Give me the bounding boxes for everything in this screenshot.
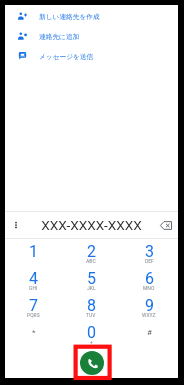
button[interactable]: More options — [5, 212, 27, 238]
staticText: 0 — [87, 323, 96, 342]
staticText: 3 — [145, 242, 154, 261]
button[interactable]: 6 — [120, 266, 178, 293]
staticText: 8 — [87, 296, 96, 315]
staticText: メッセージを送信 — [39, 53, 94, 61]
staticText: 1 — [29, 242, 38, 261]
button[interactable]: 連絡先に追加 — [5, 25, 178, 45]
button[interactable]: Call — [80, 351, 104, 375]
button[interactable]: 8 — [62, 293, 120, 320]
staticText: 2 — [87, 242, 96, 261]
staticText: DEF — [145, 258, 154, 264]
staticText: PQRS — [27, 312, 40, 318]
button[interactable]: 2 — [62, 239, 120, 266]
staticText: 7 — [29, 296, 38, 315]
button[interactable]: 0 — [62, 320, 120, 347]
staticText: XXX-XXXX-XXXX — [5, 217, 178, 233]
staticText: WXYZ — [142, 312, 156, 318]
button[interactable]: 5 — [62, 266, 120, 293]
staticText: MNO — [143, 285, 155, 291]
button[interactable]: 9 — [120, 293, 178, 320]
staticText: GHI — [29, 285, 38, 291]
staticText: ABC — [86, 258, 96, 264]
button[interactable]: 1 — [5, 239, 62, 266]
button[interactable]: * — [5, 320, 62, 347]
button[interactable]: メッセージを送信 — [5, 45, 178, 65]
button[interactable]: Backspace — [154, 212, 178, 238]
staticText: JKL — [87, 285, 96, 291]
staticText: 6 — [145, 269, 154, 288]
staticText: 5 — [87, 269, 96, 288]
button[interactable]: 新しい連絡先を作成 — [5, 5, 178, 25]
staticText: 連絡先に追加 — [39, 33, 80, 41]
staticText: + — [90, 339, 93, 345]
staticText: 9 — [145, 296, 154, 315]
button[interactable]: # — [120, 320, 178, 347]
staticText: # — [147, 328, 152, 337]
staticText: * — [32, 328, 36, 337]
button[interactable]: 7 — [5, 293, 62, 320]
staticText: TUV — [86, 312, 96, 318]
staticText: 4 — [29, 269, 38, 288]
button[interactable]: 4 — [5, 266, 62, 293]
button[interactable]: 3 — [120, 239, 178, 266]
staticText: 新しい連絡先を作成 — [39, 13, 100, 21]
